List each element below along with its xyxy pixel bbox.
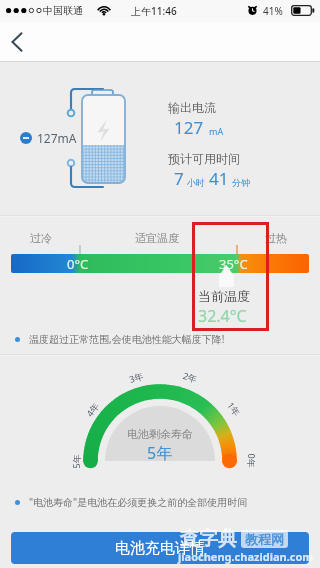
staticText: 4年: [83, 399, 102, 419]
staticText: 41%: [263, 4, 283, 18]
staticText: 0°C: [67, 255, 89, 273]
staticText: 过冷: [30, 231, 52, 245]
staticText: 电池充电详情: [115, 539, 205, 558]
staticText: 0年: [245, 453, 257, 468]
staticText: 41: [209, 167, 229, 190]
staticText: 1年: [225, 399, 244, 419]
staticText: 5年: [147, 442, 173, 464]
staticText: 7: [174, 167, 184, 190]
staticText: 分钟: [232, 177, 250, 188]
staticText: 温度超过正常范围,会使电池性能大幅度下降!: [29, 332, 225, 346]
staticText: 127: [174, 116, 204, 139]
staticText: 预计可用时间: [168, 151, 240, 166]
staticText: mA: [209, 125, 224, 137]
staticText: 过热: [265, 231, 287, 245]
staticText: 小时: [187, 177, 205, 188]
staticText: 127mA: [37, 130, 77, 146]
button[interactable]: 电池充电详情: [11, 532, 309, 564]
staticText: jiaocheng.chazidian.com: [178, 549, 314, 564]
staticText: 适宜温度: [135, 231, 179, 245]
staticText: 中国联通: [43, 4, 83, 17]
staticText: 2年: [181, 369, 199, 385]
staticText: 电池剩余寿命: [127, 427, 193, 441]
button[interactable]: Back: [0, 22, 42, 62]
staticText: 输出电流: [168, 100, 216, 115]
staticText: 32.4°C: [198, 305, 247, 327]
staticText: 35°C: [219, 255, 248, 273]
staticText: 5年: [69, 453, 81, 468]
staticText: "电池寿命"是电池在必须更换之前的全部使用时间: [29, 495, 248, 509]
staticText: 当前温度: [198, 288, 250, 304]
staticText: 教程网: [245, 531, 284, 547]
staticText: 查字典: [180, 527, 237, 551]
staticText: 上午11:46: [131, 4, 177, 18]
staticText: 3年: [127, 369, 145, 385]
